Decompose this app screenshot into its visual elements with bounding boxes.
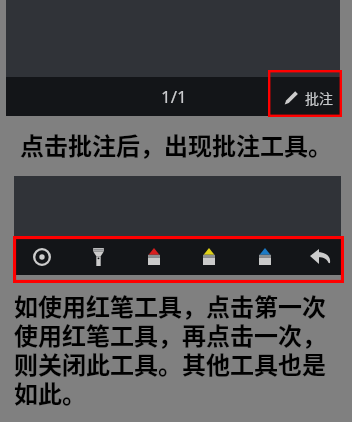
button[interactable]: Highlighter bbox=[77, 238, 119, 275]
button[interactable]: Yellow pen bbox=[188, 238, 230, 275]
button[interactable]: Undo bbox=[299, 238, 341, 275]
staticText: 1/1 bbox=[161, 85, 187, 108]
button[interactable]: Select bbox=[21, 238, 63, 275]
staticText: 点击批注后，出现批注工具。 bbox=[20, 127, 332, 159]
button[interactable]: Red pen bbox=[133, 238, 175, 275]
button[interactable]: 批注 bbox=[268, 70, 342, 117]
staticText: 如使用红笔工具，点击第一次使用红笔工具，再点击一次，则关闭此工具。其他工具也是如… bbox=[14, 288, 339, 410]
button[interactable]: Blue pen bbox=[244, 238, 286, 275]
staticText: 批注 bbox=[305, 88, 333, 108]
